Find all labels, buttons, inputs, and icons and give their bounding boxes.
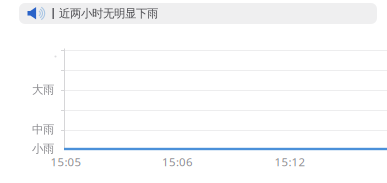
- staticText: 中雨: [32, 122, 54, 137]
- staticText: 大雨: [32, 82, 54, 97]
- button[interactable]: 近两小时无明显下雨: [19, 3, 377, 24]
- staticText: 15:05: [50, 154, 81, 169]
- staticText: 15:12: [274, 154, 305, 169]
- staticText: 小雨: [32, 141, 54, 156]
- staticText: 近两小时无明显下雨: [59, 6, 158, 21]
- staticText: 15:06: [162, 154, 193, 169]
